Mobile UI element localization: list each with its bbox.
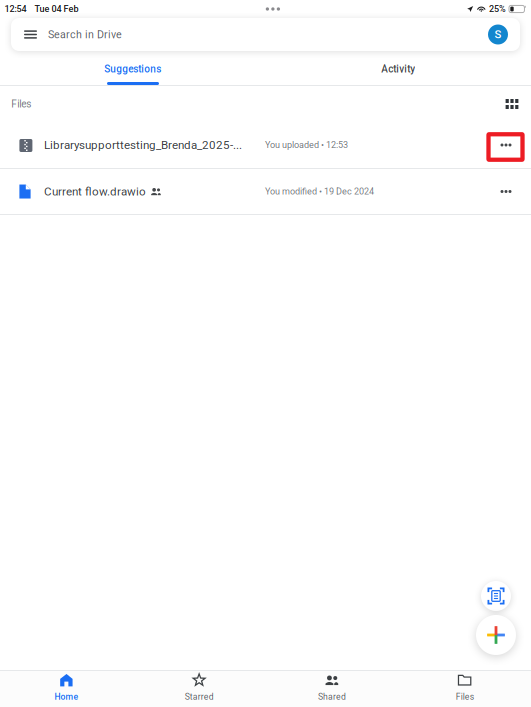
button[interactable]: Files bbox=[398, 670, 531, 707]
button[interactable]: Scan bbox=[481, 581, 511, 611]
staticText: Shared bbox=[318, 692, 346, 702]
button[interactable]: Shared bbox=[265, 670, 398, 707]
staticText: 25% bbox=[489, 4, 506, 14]
staticText: Current flow.drawio bbox=[44, 185, 146, 198]
button[interactable]: Home bbox=[0, 670, 133, 707]
button[interactable]: Starred bbox=[133, 670, 266, 707]
staticText: Starred bbox=[185, 692, 214, 702]
staticText: Search in Drive bbox=[48, 28, 122, 41]
button[interactable]: Search in Drive bbox=[0, 18, 531, 51]
staticText: Home bbox=[54, 692, 78, 702]
staticText: You uploaded • 12:53 bbox=[265, 140, 348, 150]
button[interactable]: More options bbox=[485, 170, 527, 212]
staticText: Librarysupporttesting_Brenda_2025-... bbox=[44, 138, 242, 152]
staticText: 12:54 bbox=[5, 4, 27, 14]
staticText: Files bbox=[456, 692, 474, 702]
button[interactable]: More options bbox=[485, 124, 527, 166]
button[interactable]: Suggestions bbox=[0, 53, 265, 85]
staticText: Activity bbox=[381, 63, 415, 75]
button[interactable]: Create new bbox=[476, 615, 516, 655]
staticText: Files bbox=[11, 98, 31, 110]
staticText: S bbox=[494, 28, 501, 41]
staticText: Tue 04 Feb bbox=[35, 4, 79, 14]
button[interactable]: Switch to grid view bbox=[495, 87, 529, 121]
staticText: Suggestions bbox=[104, 63, 161, 75]
button[interactable]: Activity bbox=[265, 53, 531, 85]
staticText: You modified • 19 Dec 2024 bbox=[265, 186, 374, 197]
